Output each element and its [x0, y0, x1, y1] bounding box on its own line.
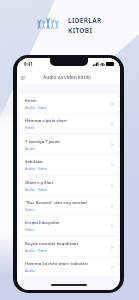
staticText: Buyuk insonlar haqidislari: [25, 241, 79, 247]
button[interactable]: Olam o'g'illari: [19, 176, 118, 195]
button[interactable]: Hamma o'qishi shart: [19, 114, 118, 133]
staticText: Video: [25, 125, 35, 130]
staticText: Audio · Video: [25, 187, 48, 192]
button[interactable]: 7 savolga 7 javob: [19, 135, 118, 154]
staticText: Eroqki hikoyatlar: [25, 220, 60, 226]
staticText: LIDERLAR: [68, 16, 102, 25]
button[interactable]: Eroqki hikoyatlar: [19, 216, 118, 235]
staticText: KITOBI: [68, 26, 93, 35]
button[interactable]: Sahifalar: [19, 155, 118, 174]
staticText: Audio va video kitobi: [43, 74, 91, 81]
button[interactable]: Kirish: [19, 94, 118, 113]
staticText: Video: [25, 227, 35, 232]
staticText: Audio: [25, 268, 35, 273]
staticText: Audio: [25, 146, 35, 151]
staticText: Audio · Video: [25, 105, 48, 110]
staticText: Audio · Video: [25, 166, 48, 171]
button[interactable]: "Rus fikrwoti" dan eng saralari: [19, 196, 118, 215]
staticText: Kirish: [25, 98, 37, 104]
staticText: Audio · Video: [25, 248, 48, 253]
staticText: "Rus fikrwoti" dan eng saralari: [25, 200, 88, 206]
button[interactable]: Buyuk insonlar haqidislari: [19, 237, 118, 256]
staticText: Olam o'g'illari: [25, 180, 54, 186]
staticText: Video: [25, 207, 35, 212]
button[interactable]: Menu: [18, 73, 27, 82]
staticText: 9:41: [24, 61, 33, 67]
staticText: Hamma o'qishi shart: [25, 118, 68, 124]
staticText: 7 savolga 7 javob: [25, 139, 60, 145]
staticText: Sahifalar: [25, 159, 44, 165]
staticText: Hamma ko'rishi shart videolari: [25, 261, 88, 267]
button[interactable]: Hamma ko'rishi shart videolari: [19, 257, 118, 276]
